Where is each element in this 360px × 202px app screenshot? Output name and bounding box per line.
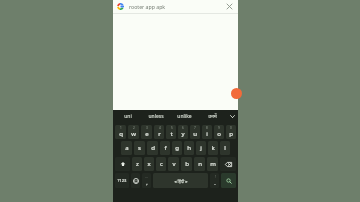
staticText: 5 [171, 126, 173, 130]
button[interactable]: 8 [202, 125, 212, 139]
staticText: v [172, 160, 176, 168]
button[interactable]: f [160, 141, 170, 155]
staticText: m [210, 160, 216, 168]
staticText: l [224, 144, 226, 152]
button[interactable]: Space [153, 173, 208, 188]
staticText: o [217, 130, 221, 138]
button[interactable]: ! [210, 173, 219, 188]
staticText: 3 [146, 126, 148, 130]
staticText: g [175, 144, 179, 152]
staticText: uni [124, 113, 132, 120]
button[interactable]: h [184, 141, 194, 155]
staticText: 6 [182, 126, 184, 130]
button[interactable]: 6 [178, 125, 188, 139]
staticText: e [145, 130, 149, 138]
staticText: n [198, 160, 202, 168]
button[interactable]: z [132, 157, 142, 171]
button[interactable]: b [181, 157, 192, 171]
staticText: 7 [194, 126, 196, 130]
staticText: a [125, 144, 129, 152]
staticText: t [170, 130, 173, 138]
staticText: 0 [230, 126, 232, 130]
staticText: उनमें [208, 113, 217, 120]
button[interactable]: v [168, 157, 179, 171]
staticText: q [119, 130, 123, 138]
button[interactable]: Backspace [220, 157, 236, 171]
button[interactable]: उनमें [198, 110, 226, 123]
button[interactable]: s [134, 141, 145, 155]
staticText: f [164, 144, 167, 152]
button[interactable]: Google [113, 0, 238, 13]
button[interactable]: j [196, 141, 206, 155]
staticText: r [158, 130, 161, 138]
button[interactable]: 9 [214, 125, 224, 139]
button[interactable]: ?123 [115, 173, 129, 188]
staticText: 2 [133, 126, 135, 130]
staticText: w [131, 130, 136, 138]
button[interactable]: unlike [170, 110, 198, 123]
staticText: c [160, 160, 163, 168]
staticText: j [200, 144, 202, 152]
staticText: y [181, 130, 185, 138]
staticText: x [147, 160, 151, 168]
button[interactable]: 2 [128, 125, 139, 139]
button[interactable]: a [121, 141, 132, 155]
button[interactable]: l [220, 141, 230, 155]
staticText: p [229, 130, 233, 138]
staticText: u [193, 130, 197, 138]
button[interactable]: g [172, 141, 182, 155]
staticText: k [211, 144, 215, 152]
other: Google [117, 3, 124, 10]
button[interactable]: 5 [166, 125, 176, 139]
staticText: ! [215, 175, 216, 179]
staticText: , [146, 179, 148, 186]
staticText: 4 [159, 126, 161, 130]
button[interactable]: 3 [141, 125, 152, 139]
staticText: s [138, 144, 141, 152]
staticText: 8 [206, 126, 208, 130]
button[interactable]: c [156, 157, 166, 171]
staticText: rooter app apk [129, 3, 225, 10]
button[interactable]: x [144, 157, 154, 171]
staticText: z [136, 160, 139, 168]
staticText: unlike [177, 113, 192, 120]
staticText: … [145, 175, 148, 179]
button[interactable]: Search [221, 173, 236, 188]
button[interactable]: Clear [225, 2, 234, 11]
staticText: d [151, 144, 155, 152]
button[interactable]: 1 [115, 125, 126, 139]
button[interactable]: k [208, 141, 218, 155]
button[interactable]: uni [113, 110, 142, 123]
button[interactable]: … [142, 173, 151, 188]
staticText: unless [148, 113, 164, 120]
button[interactable]: Shift [115, 157, 130, 171]
staticText: . [214, 179, 216, 186]
button[interactable]: 7 [190, 125, 200, 139]
staticText: h [187, 144, 191, 152]
button[interactable]: n [194, 157, 205, 171]
staticText: 1 [120, 126, 122, 130]
staticText: 9 [218, 126, 220, 130]
staticText: i [206, 130, 208, 138]
button[interactable]: 0 [226, 125, 236, 139]
staticText: b [185, 160, 189, 168]
staticText: ?123 [117, 178, 127, 184]
button[interactable]: d [147, 141, 158, 155]
button[interactable]: Emoji [131, 173, 140, 188]
staticText: ◂ हिंदी ▸ [174, 178, 188, 184]
button[interactable]: 4 [154, 125, 164, 139]
button[interactable]: More suggestions [226, 110, 238, 123]
button[interactable]: unless [142, 110, 170, 123]
button[interactable]: m [207, 157, 218, 171]
